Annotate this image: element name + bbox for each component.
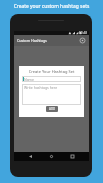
- button[interactable]: Name: [22, 76, 81, 82]
- button[interactable]: Back: [26, 152, 35, 161]
- staticText: ADD: [49, 107, 56, 111]
- button[interactable]: Recents: [68, 152, 77, 161]
- button[interactable]: Home: [47, 152, 56, 161]
- staticText: Name: [24, 77, 34, 82]
- button[interactable]: ADD: [46, 106, 58, 112]
- staticText: Create your custom hashtag sets: [0, 3, 103, 10]
- staticText: Custom Hashtags: [17, 38, 47, 43]
- staticText: Write hashtags here: [24, 85, 58, 90]
- button[interactable]: Add hashtag set: [78, 36, 87, 45]
- staticText: 10:48: [79, 31, 88, 35]
- staticText: Create Your Hashtag Set: [19, 69, 84, 74]
- button[interactable]: Write hashtags here: [22, 84, 81, 105]
